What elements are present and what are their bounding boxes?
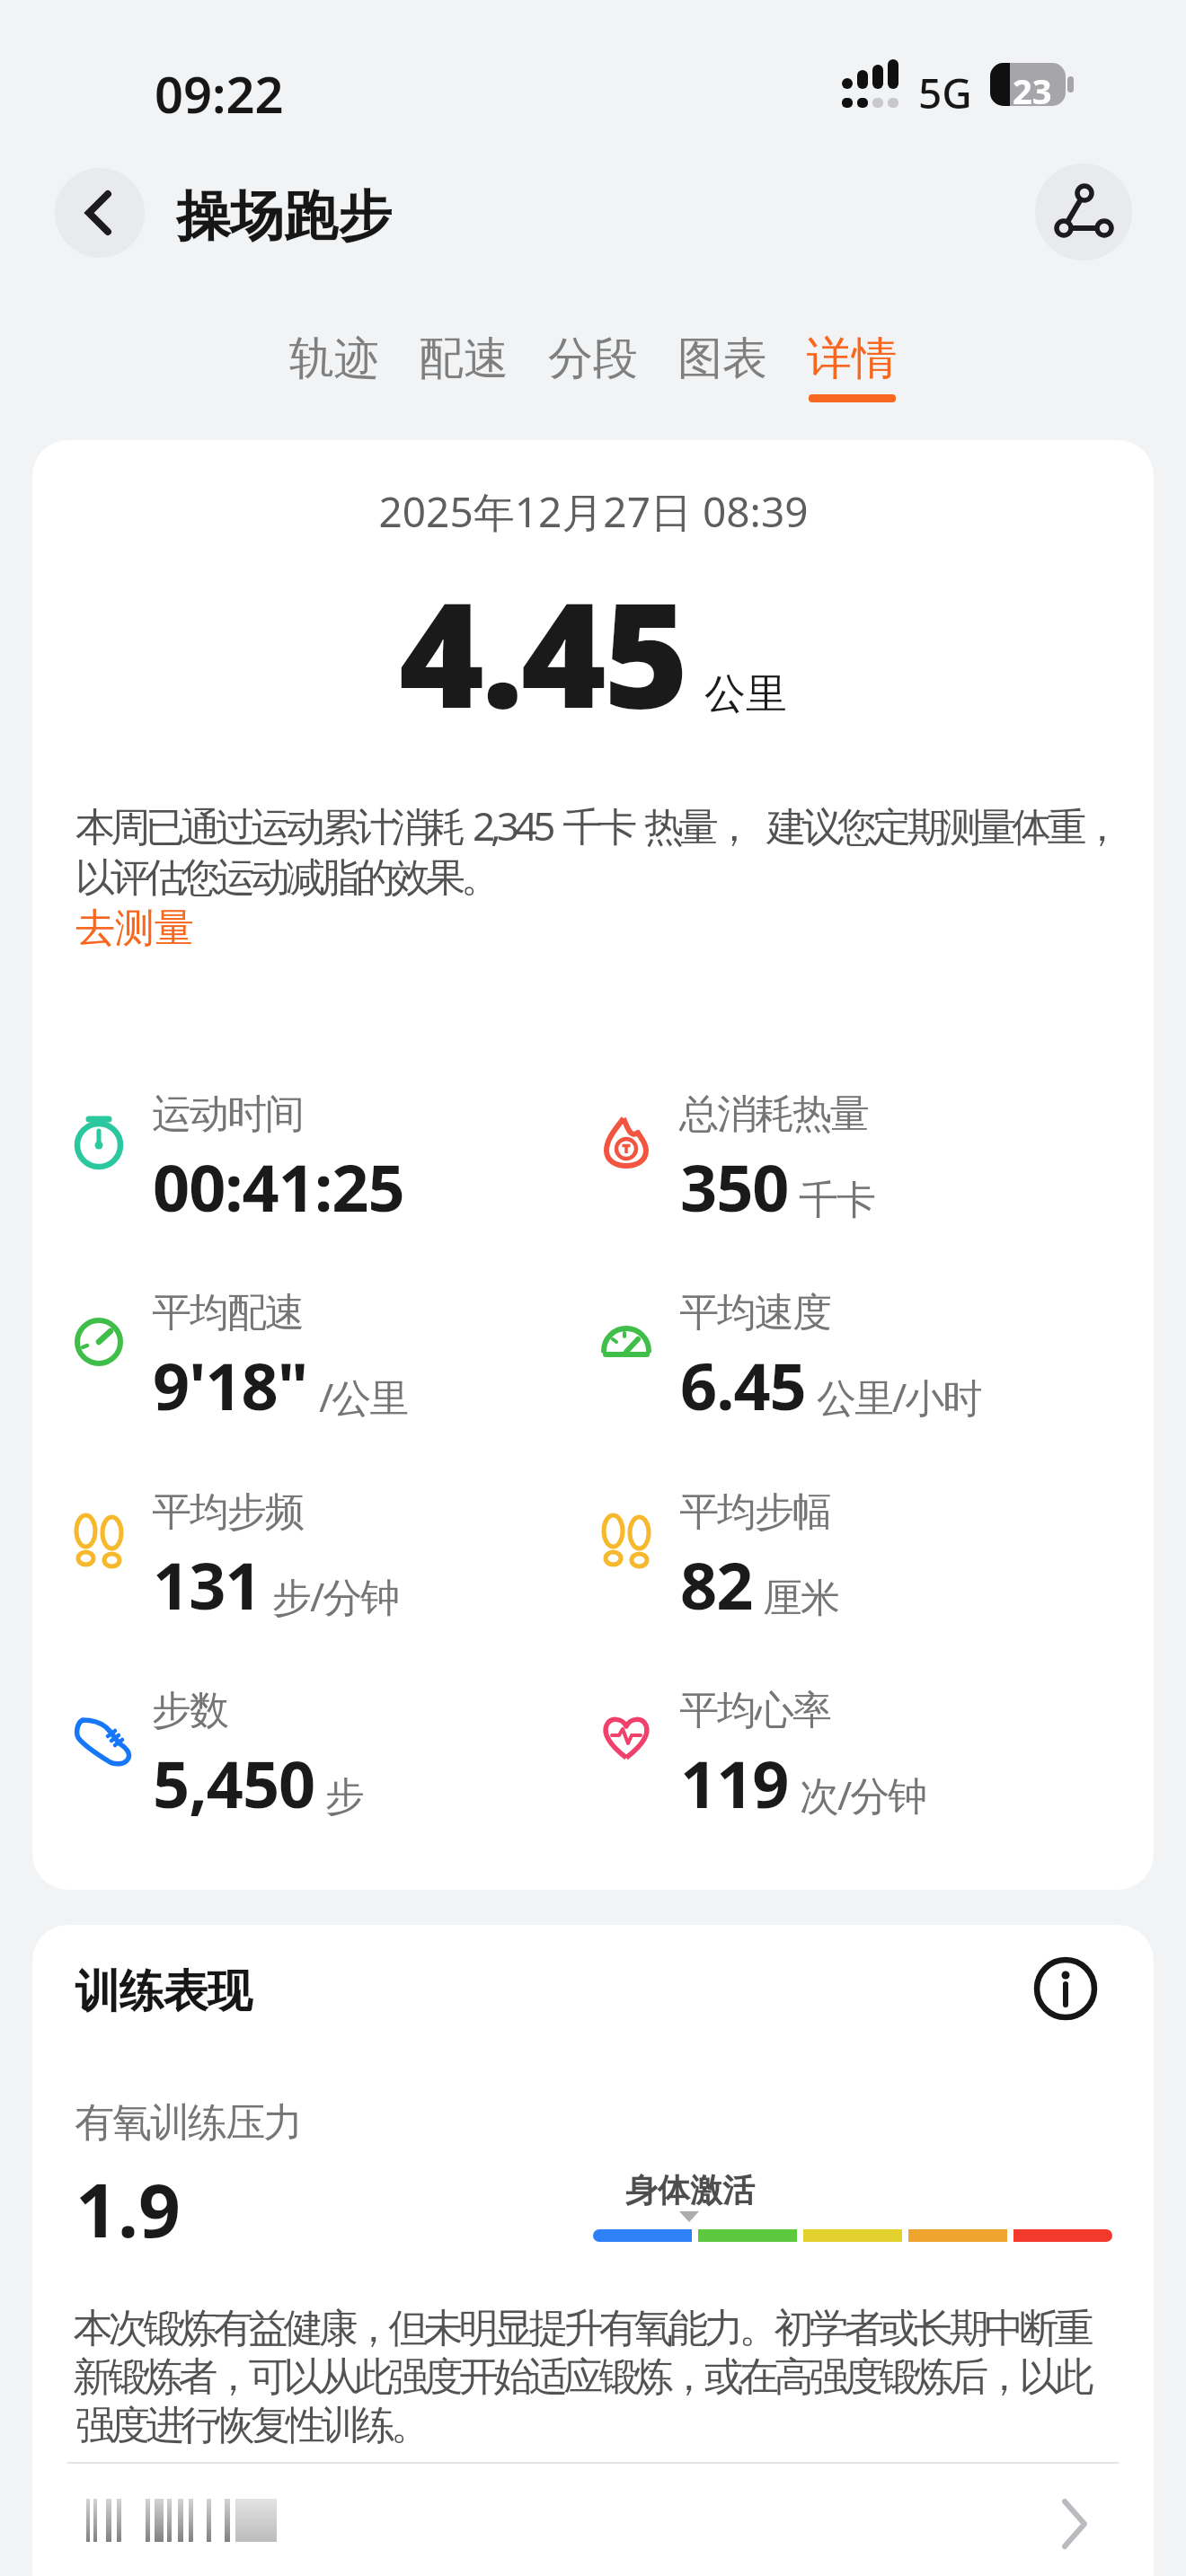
staticText: 5,450 [153,1739,315,1827]
staticText: 轨迹 [289,331,379,387]
staticText: 平均步频 [153,1487,304,1537]
button[interactable]: 配速 [419,331,509,394]
staticText: 步/分钟 [272,1569,399,1623]
button[interactable]: 分段 [548,331,638,394]
staticText: 详情 [807,331,897,387]
staticText: 千卡 [800,1176,875,1225]
button[interactable]: 详情 [807,331,897,402]
staticText: 去测量 [75,904,194,953]
staticText: 1.9 [75,2158,181,2259]
button[interactable] [1033,1956,1098,2021]
button[interactable] [1035,163,1132,260]
staticText: 平均步幅 [680,1487,831,1537]
staticText: 6.45 [680,1341,806,1429]
staticText: 步 [326,1772,364,1822]
staticText: 平均配速 [153,1288,304,1337]
staticText: 运动时间 [153,1090,304,1139]
button[interactable]: 图表 [677,331,767,394]
staticText: 131 [153,1540,261,1628]
staticText: 图表 [677,331,767,387]
staticText: 操场跑步 [176,182,392,251]
staticText: 9'18" [153,1341,308,1429]
staticText: 配速 [419,331,509,387]
staticText: 步数 [153,1686,228,1735]
staticText: 平均心率 [680,1686,831,1735]
staticText: 次/分钟 [800,1768,926,1822]
staticText: 公里/小时 [817,1370,981,1424]
staticText: 本次锻炼有益健康，但未明显提升有氧能力。初学者或长期中断重 新锻炼者，可以从此强… [75,2304,1092,2450]
staticText: 有氧训练压力 [75,2098,302,2148]
staticText: 总消耗热量 [680,1090,869,1139]
button[interactable] [55,168,145,258]
staticText: 09:22 [155,59,284,128]
staticText: 身体激活 [625,2170,755,2210]
button[interactable]: 去测量 [75,904,194,953]
staticText: 23 [1013,67,1052,114]
button[interactable] [1042,2488,1105,2560]
button[interactable]: 轨迹 [289,331,379,394]
staticText: 分段 [548,331,638,387]
staticText: 350 [680,1142,789,1231]
staticText: 5G [918,65,972,121]
staticText: 平均速度 [680,1288,831,1337]
staticText: 厘米 [764,1574,839,1623]
staticText: 119 [680,1739,789,1827]
staticText: 4.45 [399,552,686,751]
staticText: 公里 [704,668,787,720]
staticText: 82 [680,1540,753,1628]
staticText: /公里 [319,1370,408,1424]
staticText: 2025年12月27日 08:39 [378,483,809,540]
staticText: 训练表现 [75,1963,252,2020]
staticText: 00:41:25 [153,1142,404,1231]
staticText: 本周已通过运动累计消耗 2,345 千卡 热量， 建议您定期测量体重， 以评估您… [75,798,1118,903]
